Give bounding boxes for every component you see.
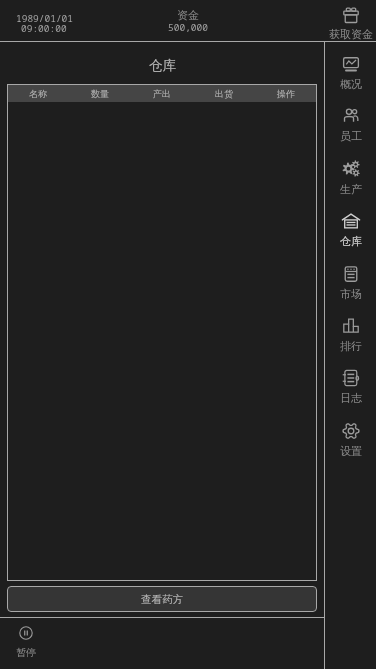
staticText: 员工 bbox=[340, 129, 362, 143]
staticText: 产出 bbox=[131, 88, 193, 99]
staticText: 市场 bbox=[340, 287, 362, 301]
staticText: 数量 bbox=[69, 88, 131, 99]
button[interactable]: 市场 bbox=[325, 257, 376, 309]
staticText: 设置 bbox=[340, 444, 362, 458]
staticText: 概况 bbox=[340, 77, 362, 91]
staticText: 查看药方 bbox=[141, 593, 183, 606]
staticText: 排行 bbox=[340, 339, 362, 353]
staticText: 500,000 bbox=[168, 21, 208, 34]
button[interactable]: 查看药方 bbox=[7, 586, 317, 612]
staticText: 操作 bbox=[255, 88, 317, 99]
staticText: 日志 bbox=[340, 391, 362, 405]
button[interactable]: 仓库 bbox=[325, 204, 376, 256]
staticText: 09:00:00 bbox=[21, 22, 67, 35]
button[interactable]: 员工 bbox=[325, 99, 376, 151]
staticText: 仓库 bbox=[149, 57, 176, 74]
staticText: 出货 bbox=[193, 88, 255, 99]
button[interactable]: 设置 bbox=[325, 414, 376, 466]
staticText: 名称 bbox=[7, 88, 69, 99]
button[interactable]: 暂停 bbox=[6, 622, 46, 666]
staticText: 生产 bbox=[340, 182, 362, 196]
button[interactable]: 概况 bbox=[325, 47, 376, 99]
staticText: 暂停 bbox=[16, 646, 36, 659]
button[interactable]: 生产 bbox=[325, 152, 376, 204]
staticText: 获取资金 bbox=[329, 27, 373, 41]
button[interactable]: 日志 bbox=[325, 361, 376, 413]
staticText: 资金 bbox=[177, 8, 199, 22]
staticText: 仓库 bbox=[340, 234, 362, 248]
button[interactable]: 获取资金 bbox=[325, 0, 376, 41]
staticText: 1989/01/01 bbox=[16, 12, 74, 25]
button[interactable]: 排行 bbox=[325, 309, 376, 361]
